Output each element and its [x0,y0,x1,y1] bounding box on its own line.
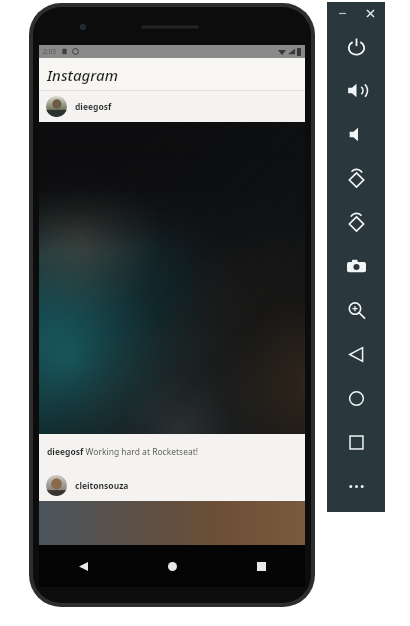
button[interactable]: Home [157,551,187,581]
button[interactable]: Rotate left [327,156,385,200]
button[interactable]: Back [68,551,98,581]
button[interactable]: Power [327,24,385,68]
staticText: Instagram [47,65,118,85]
staticText: 2:03 [43,47,56,56]
button[interactable]: Take screenshot [327,244,385,288]
button[interactable]: cleitonsouza [39,470,305,501]
button[interactable]: Volume down [327,112,385,156]
button[interactable]: Rotate right [327,200,385,244]
button[interactable]: Instagram [39,58,305,91]
button[interactable]: Recent apps [246,551,276,581]
button[interactable]: Back [327,332,385,376]
staticText: dieegosf Working hard at Rocketseat! [47,446,199,458]
button[interactable]: Close [362,5,378,21]
staticText: dieegosf [75,101,112,113]
button[interactable]: Volume up [327,68,385,112]
button[interactable]: Home [327,376,385,420]
button[interactable]: More [327,464,385,508]
staticText: cleitonsouza [75,480,129,492]
button[interactable]: Minimize [334,5,350,21]
button[interactable]: Zoom [327,288,385,332]
button[interactable]: dieegosf [39,91,305,122]
button[interactable]: Overview [327,420,385,464]
